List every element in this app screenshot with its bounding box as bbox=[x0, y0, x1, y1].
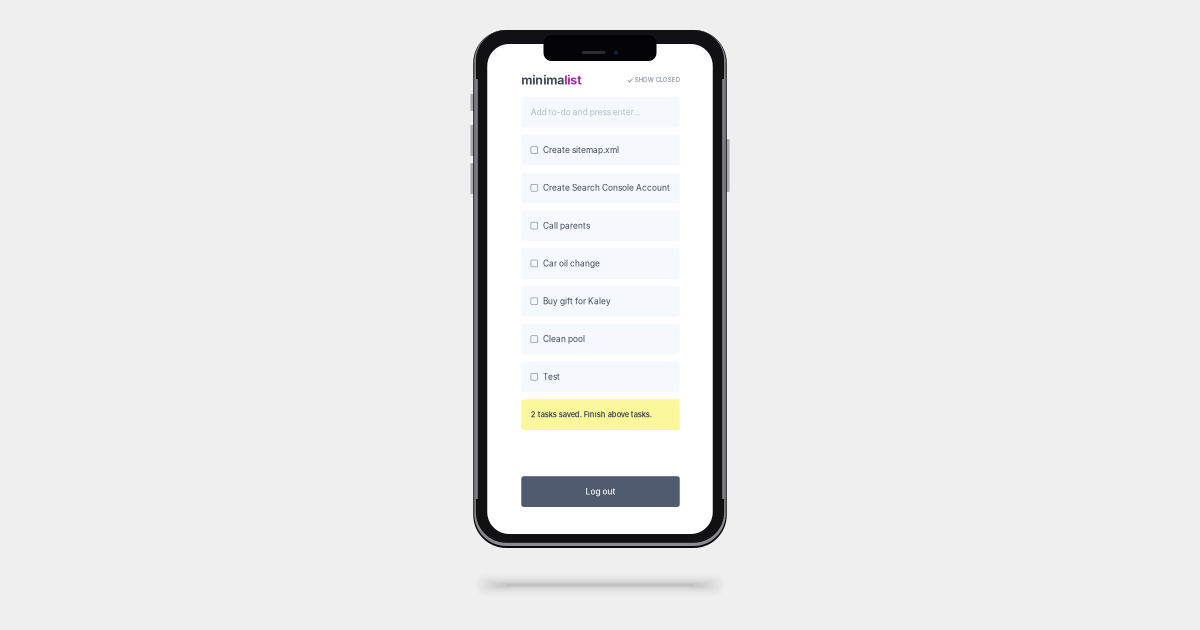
staticText: SHOW CLOSED bbox=[635, 76, 680, 83]
button[interactable]: Clean pool bbox=[521, 324, 680, 354]
button[interactable]: Add to-do and press enter... bbox=[521, 97, 680, 128]
button[interactable]: Create sitemap.xml bbox=[521, 135, 680, 165]
staticText: Buy gift for Kaley bbox=[543, 296, 611, 306]
button[interactable]: Car oil change bbox=[521, 248, 680, 279]
staticText: Call parents bbox=[543, 221, 590, 231]
staticText: Create Search Console Account bbox=[543, 183, 670, 193]
staticText: 2 tasks saved. Finish above tasks. bbox=[531, 410, 652, 419]
staticText: list bbox=[564, 72, 581, 87]
button[interactable]: ✓ bbox=[627, 76, 680, 84]
button[interactable]: Call parents bbox=[521, 210, 680, 241]
staticText: Create sitemap.xml bbox=[543, 145, 619, 155]
staticText: Test bbox=[543, 372, 560, 382]
button[interactable]: Log out bbox=[521, 476, 680, 507]
button[interactable]: Create Search Console Account bbox=[521, 172, 680, 203]
staticText: minima bbox=[521, 72, 564, 87]
button[interactable]: Buy gift for Kaley bbox=[521, 286, 680, 317]
button[interactable]: Test bbox=[521, 361, 680, 392]
staticText: Clean pool bbox=[543, 334, 585, 344]
staticText: Log out bbox=[585, 487, 615, 497]
staticText: Add to-do and press enter... bbox=[531, 107, 640, 117]
staticText: Car oil change bbox=[543, 258, 600, 268]
staticText: ✓ bbox=[627, 76, 633, 84]
